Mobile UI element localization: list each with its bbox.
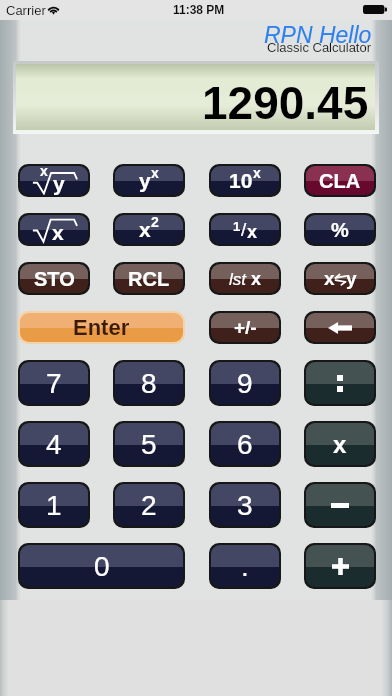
staticText: 1 <box>233 219 241 234</box>
staticText: x <box>40 166 48 179</box>
button[interactable]: 1 <box>211 215 279 244</box>
staticText: % <box>331 219 349 241</box>
button[interactable]: 0 <box>20 545 183 587</box>
staticText: x <box>251 269 262 289</box>
staticText: 9 <box>237 368 253 399</box>
staticText: Classic Calculator <box>267 40 372 55</box>
staticText: 2 <box>141 490 157 521</box>
staticText: Carrier <box>6 3 46 18</box>
staticText: 8 <box>141 368 157 399</box>
staticText: 1290.45 <box>202 77 369 128</box>
button[interactable]: Enter <box>20 313 183 342</box>
button[interactable]: x <box>20 166 88 195</box>
staticText: 0 <box>94 551 110 582</box>
button[interactable]: 8 <box>115 362 183 404</box>
staticText: . <box>241 551 249 582</box>
staticText: x <box>253 166 261 181</box>
staticText: RCL <box>128 268 170 290</box>
staticText: / <box>241 219 247 240</box>
staticText: 10 <box>229 169 253 192</box>
button[interactable]: 7 <box>20 362 88 404</box>
staticText: y <box>346 268 357 289</box>
staticText: STO <box>34 268 75 290</box>
staticText: RPN Hello <box>264 22 372 48</box>
staticText: Enter <box>73 315 130 340</box>
button[interactable]: Divide <box>306 362 374 404</box>
button[interactable]: Plus <box>306 545 374 587</box>
staticText: lst <box>229 270 251 289</box>
staticText: 11:38 PM <box>173 3 225 16</box>
staticText: x <box>52 221 64 244</box>
button[interactable]: RCL <box>115 264 183 293</box>
button[interactable]: 5 <box>115 423 183 465</box>
button[interactable]: . <box>211 545 279 587</box>
staticText: x <box>151 166 159 181</box>
button[interactable]: 3 <box>211 484 279 526</box>
button[interactable]: 4 <box>20 423 88 465</box>
staticText: CLA <box>319 170 361 192</box>
staticText: x <box>333 431 347 458</box>
button[interactable]: x <box>306 423 374 465</box>
button[interactable]: 2 <box>115 484 183 526</box>
staticText: 1 <box>46 490 62 521</box>
staticText: y <box>139 169 151 192</box>
button[interactable]: 1 <box>20 484 88 526</box>
button[interactable]: STO <box>20 264 88 293</box>
staticText: 5 <box>141 429 157 460</box>
staticText: x <box>247 222 258 242</box>
staticText: 4 <box>46 429 62 460</box>
staticText: +/- <box>234 317 257 338</box>
button[interactable]: 10 <box>211 166 279 195</box>
staticText: x <box>324 268 335 289</box>
button[interactable]: 6 <box>211 423 279 465</box>
staticText: x <box>139 218 151 241</box>
staticText: 6 <box>237 429 253 460</box>
button[interactable]: x <box>20 215 88 244</box>
button[interactable]: CLA <box>306 166 374 195</box>
button[interactable]: Minus <box>306 484 374 526</box>
staticText: 7 <box>46 368 62 399</box>
staticText: y <box>53 172 65 195</box>
button[interactable]: 9 <box>211 362 279 404</box>
button[interactable]: lst <box>211 264 279 293</box>
button[interactable]: x <box>115 215 183 244</box>
button[interactable]: y <box>115 166 183 195</box>
button[interactable]: x <box>306 264 374 293</box>
button[interactable]: +/- <box>211 313 279 342</box>
button[interactable]: Backspace <box>306 313 374 342</box>
staticText: 3 <box>237 490 253 521</box>
staticText: 2 <box>151 215 159 230</box>
button[interactable]: % <box>306 215 374 244</box>
